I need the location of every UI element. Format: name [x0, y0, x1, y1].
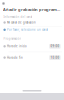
staticText: Por favor, seleccione un canal — [7, 28, 48, 31]
staticText: Añadir grabación programada — [3, 7, 61, 12]
staticText: Mi canal de grabación — [7, 21, 36, 24]
button[interactable]: Back — [0, 0, 7, 7]
staticText: Hora de inicio — [7, 44, 27, 48]
staticText: 09:00 — [50, 44, 59, 48]
staticText: Hora de fin — [7, 56, 23, 59]
staticText: Programación — [3, 37, 21, 40]
button[interactable]: Mi canal de grabación — [2, 19, 62, 26]
staticText: 10:00 — [50, 56, 59, 59]
button[interactable]: Hora de fin — [2, 52, 62, 63]
staticText: Información del canal — [3, 15, 32, 19]
button[interactable]: Por favor, seleccione un canal — [2, 26, 62, 33]
button[interactable]: Hora de inicio — [2, 41, 62, 52]
